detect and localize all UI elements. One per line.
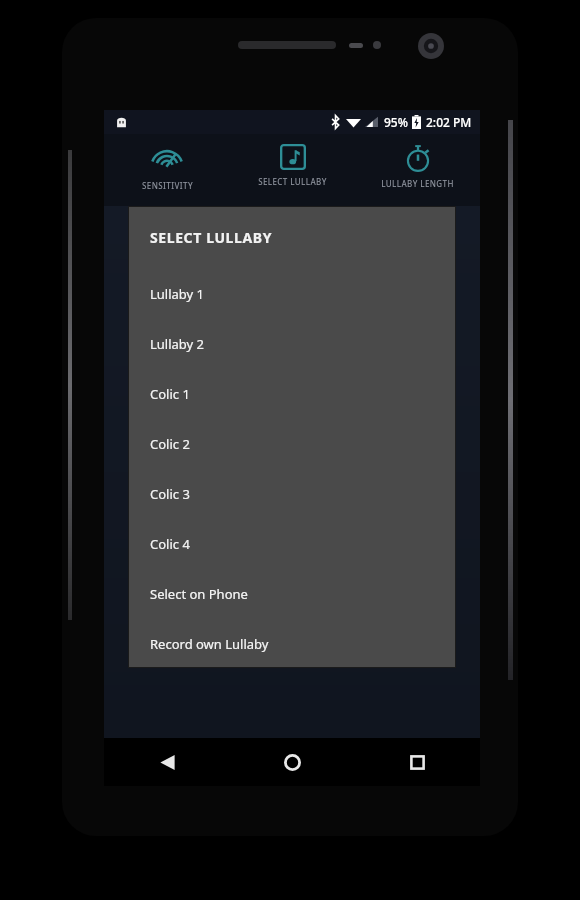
button[interactable]: Home [230,738,355,786]
other: Lullaby length [404,144,432,172]
staticText: Select on Phone [150,585,248,603]
staticText: Lullaby 2 [150,335,205,353]
button[interactable]: Select lullaby [230,134,355,206]
other: Sensitivity [152,144,182,174]
staticText: SENSITIVITY [142,180,193,191]
staticText: 2:02 PM [426,114,472,130]
staticText: Colic 4 [150,535,190,553]
staticText: Record own Lullaby [150,635,269,653]
button[interactable]: Lullaby 1 [128,269,456,319]
button[interactable]: Colic 1 [128,369,456,419]
button[interactable]: Back [104,738,230,786]
staticText: SELECT LULLABY [258,176,327,187]
button[interactable]: Colic 3 [128,469,456,519]
staticText: Colic 3 [150,485,190,503]
button[interactable]: Colic 4 [128,519,456,569]
staticText: 95% [384,114,408,130]
staticText: SELECT LULLABY [150,228,273,247]
staticText: LULLABY LENGTH [381,178,454,189]
button[interactable]: Lullaby length [355,134,480,206]
staticText: Colic 2 [150,435,190,453]
button[interactable]: Select on Phone [128,569,456,619]
staticText: Lullaby 1 [150,285,205,303]
button[interactable]: Colic 2 [128,419,456,469]
button[interactable]: Lullaby 2 [128,319,456,369]
button[interactable]: Record own Lullaby [128,619,456,668]
other: Select lullaby [280,144,306,170]
button[interactable]: Sensitivity [104,134,230,206]
staticText: Colic 1 [150,385,190,403]
button[interactable]: Recent apps [355,738,480,786]
